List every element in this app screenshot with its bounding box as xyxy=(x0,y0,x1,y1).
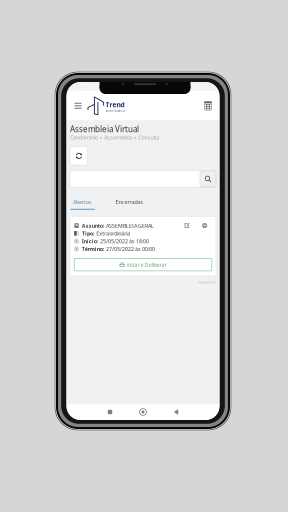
staticText: Consulta xyxy=(138,134,159,141)
staticText: Assembleia xyxy=(104,134,132,141)
button[interactable]: Menu xyxy=(72,95,83,117)
staticText: » xyxy=(100,134,103,141)
button[interactable]: Condomínio xyxy=(202,95,213,117)
button[interactable]: Abertas xyxy=(70,196,95,210)
button[interactable]: Voltar xyxy=(165,404,187,420)
staticText: 10:41 xyxy=(70,83,83,90)
staticText: Tipo: xyxy=(82,230,94,237)
staticText: Encerradas xyxy=(115,198,143,205)
staticText: Extraordinária xyxy=(95,230,130,237)
staticText: Início: xyxy=(82,238,98,245)
button[interactable]: Imprimir xyxy=(202,223,207,228)
staticText: administradora xyxy=(105,109,124,113)
staticText: Término: xyxy=(82,245,104,252)
button[interactable]: Atualizar xyxy=(70,147,88,165)
staticText: Assunto: xyxy=(82,222,104,229)
staticText: » xyxy=(134,134,137,141)
button[interactable]: Início xyxy=(132,404,154,420)
staticText: 27/05/2022 às 00:00 xyxy=(105,245,155,252)
staticText: Condomínio xyxy=(70,134,98,141)
button[interactable]: Editar xyxy=(184,223,190,228)
staticText: Votar e Deliberar xyxy=(126,261,166,268)
button[interactable]: Votar e Deliberar xyxy=(74,258,212,271)
staticText: Assembleia Virtual xyxy=(70,124,139,134)
staticText: Trend xyxy=(105,100,124,109)
staticText: Abertas xyxy=(73,198,92,205)
staticText: ASSEMBLEIA GERAL xyxy=(105,222,154,229)
staticText: 25/05/2022 às 18:00 xyxy=(99,238,149,245)
button[interactable]: Encerradas xyxy=(103,196,156,210)
staticText: 04/06/2021 xyxy=(198,280,216,285)
button[interactable]: Recentes xyxy=(99,404,121,420)
